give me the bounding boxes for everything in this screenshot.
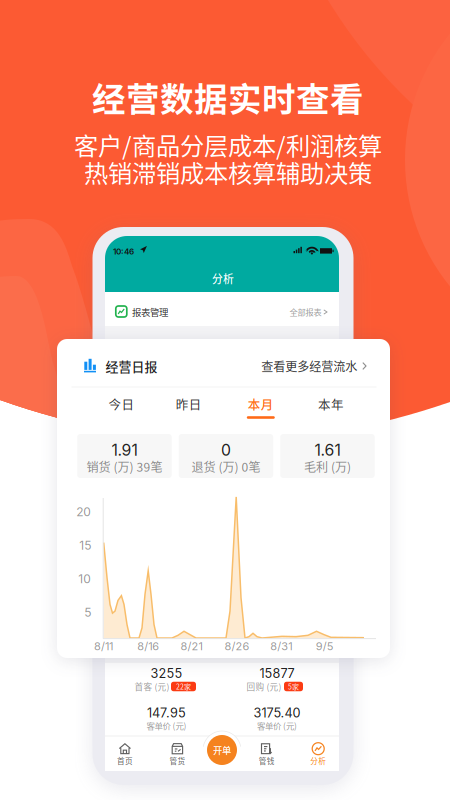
staticText: 3255 xyxy=(150,666,182,681)
staticText: 经营日报 xyxy=(105,357,157,375)
staticText: 销货 (万) 39笔 xyxy=(86,458,162,475)
button[interactable]: 本月 xyxy=(229,390,293,418)
button[interactable]: 1.61 xyxy=(280,434,375,478)
button[interactable]: 分析 xyxy=(295,736,341,770)
staticText: 回购 (元) xyxy=(246,680,281,693)
staticText: 本月 xyxy=(248,395,274,413)
staticText: 8/16 xyxy=(137,640,159,653)
staticText: 1.61 xyxy=(314,440,340,459)
staticText: 管钱 xyxy=(259,755,275,766)
staticText: 10 xyxy=(78,572,91,586)
staticText: 客单价 (元) xyxy=(146,719,186,732)
staticText: 报表管理 xyxy=(132,305,168,319)
staticText: 8/26 xyxy=(224,640,249,653)
staticText: 8/31 xyxy=(270,640,292,653)
staticText: 1.91 xyxy=(111,440,137,459)
staticText: 20 xyxy=(76,505,91,519)
staticText: 首页 xyxy=(117,755,133,766)
staticText: 147.95 xyxy=(147,705,186,721)
staticText: 9/5 xyxy=(316,640,334,653)
button[interactable]: 昨日 xyxy=(157,390,221,418)
staticText: 开单 xyxy=(213,743,231,757)
staticText: 15 xyxy=(79,538,91,553)
button[interactable]: 本年 xyxy=(299,390,363,418)
button[interactable]: 管货 xyxy=(154,736,200,770)
staticText: 8/11 xyxy=(94,640,113,653)
button[interactable]: 开单 xyxy=(207,735,237,765)
staticText: 分析 xyxy=(310,755,326,766)
staticText: 退货 (万) 0笔 xyxy=(191,458,260,475)
staticText: 首客 (元) xyxy=(134,680,169,693)
staticText: 10:46 xyxy=(113,247,134,256)
button[interactable] xyxy=(105,292,339,326)
button[interactable]: 今日 xyxy=(89,390,153,418)
button[interactable]: 首页 xyxy=(102,736,148,770)
button[interactable]: 查看更多经营流水 xyxy=(261,357,367,375)
staticText: 0 xyxy=(221,440,231,459)
staticText: 3175.40 xyxy=(253,705,300,721)
button[interactable]: 1.91 xyxy=(77,434,172,478)
staticText: 毛利 (万) xyxy=(304,458,351,475)
staticText: 22家 xyxy=(176,681,191,691)
staticText: 昨日 xyxy=(176,395,202,413)
button[interactable]: 管钱 xyxy=(244,736,290,770)
staticText: 5家 xyxy=(288,681,299,691)
button[interactable]: 0 xyxy=(179,434,273,478)
staticText: 5 xyxy=(84,605,91,620)
staticText: 8/21 xyxy=(181,640,203,653)
staticText: 热销滞销成本核算辅助决策 xyxy=(84,154,372,190)
staticText: 今日 xyxy=(108,395,134,413)
staticText: 管货 xyxy=(169,755,185,766)
staticText: 经营数据实时查看 xyxy=(92,73,364,121)
staticText: 查看更多经营流水 xyxy=(261,357,357,375)
staticText: 15877 xyxy=(259,666,294,681)
staticText: 客单价 (元) xyxy=(257,719,297,732)
staticText: 客户/商品分层成本/利润核算 xyxy=(74,127,382,162)
staticText: 本年 xyxy=(318,395,344,413)
staticText: 分析 xyxy=(212,271,234,286)
staticText: 全部报表 xyxy=(289,306,321,318)
